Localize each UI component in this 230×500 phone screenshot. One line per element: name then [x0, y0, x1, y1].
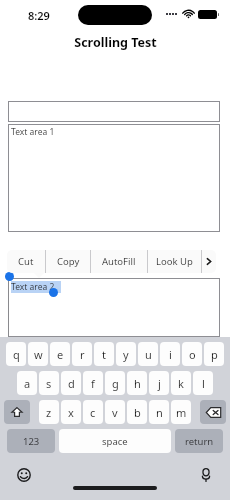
staticText: x: [68, 405, 74, 420]
button[interactable]: Text area 1: [8, 124, 220, 232]
staticText: n: [156, 405, 163, 420]
button[interactable]: a: [17, 371, 37, 395]
button[interactable]: return: [175, 429, 223, 453]
staticText: p: [211, 347, 218, 362]
staticText: Cut: [18, 255, 34, 268]
button[interactable]: r: [72, 342, 92, 366]
staticText: Look Up: [156, 255, 193, 268]
button[interactable]: c: [83, 400, 103, 424]
button[interactable]: q: [6, 342, 26, 366]
staticText: Scrolling Test: [74, 34, 157, 51]
button[interactable]: b: [127, 400, 147, 424]
staticText: u: [145, 347, 152, 362]
staticText: v: [112, 405, 118, 420]
button[interactable]: [8, 101, 220, 122]
staticText: o: [189, 347, 196, 362]
button[interactable]: u: [138, 342, 158, 366]
staticText: s: [46, 376, 52, 391]
button[interactable]: f: [83, 371, 103, 395]
button[interactable]: Cut: [7, 250, 45, 273]
staticText: c: [90, 405, 96, 420]
button[interactable]: More: [202, 250, 216, 273]
staticText: l: [202, 376, 205, 391]
button[interactable]: z: [39, 400, 59, 424]
button[interactable]: e: [50, 342, 70, 366]
button[interactable]: Emoji: [14, 465, 34, 485]
button[interactable]: Text area 2: [8, 278, 220, 337]
staticText: a: [24, 376, 31, 391]
button[interactable]: 123: [7, 429, 55, 453]
staticText: k: [178, 376, 184, 391]
button[interactable]: j: [149, 371, 169, 395]
staticText: m: [176, 405, 187, 420]
button[interactable]: h: [127, 371, 147, 395]
staticText: h: [134, 376, 141, 391]
button[interactable]: m: [171, 400, 191, 424]
button[interactable]: t: [94, 342, 114, 366]
staticText: w: [34, 347, 43, 362]
button[interactable]: o: [182, 342, 202, 366]
button[interactable]: l: [193, 371, 213, 395]
button[interactable]: Backspace: [200, 400, 226, 424]
button[interactable]: Shift: [4, 400, 30, 424]
staticText: g: [112, 376, 119, 391]
staticText: Text area 1: [11, 126, 55, 138]
button[interactable]: g: [105, 371, 125, 395]
staticText: 8:29: [28, 8, 50, 23]
staticText: e: [57, 347, 64, 362]
staticText: 123: [23, 435, 40, 448]
staticText: q: [13, 347, 20, 362]
staticText: i: [169, 347, 172, 362]
staticText: Copy: [57, 255, 80, 268]
button[interactable]: Copy: [46, 250, 90, 273]
button[interactable]: k: [171, 371, 191, 395]
staticText: b: [134, 405, 141, 420]
staticText: j: [158, 376, 161, 391]
button[interactable]: s: [39, 371, 59, 395]
staticText: space: [102, 435, 128, 448]
staticText: z: [46, 405, 52, 420]
button[interactable]: x: [61, 400, 81, 424]
button[interactable]: AutoFill: [91, 250, 147, 273]
staticText: AutoFill: [102, 255, 136, 268]
button[interactable]: Look Up: [148, 250, 201, 273]
button[interactable]: d: [61, 371, 81, 395]
staticText: d: [68, 376, 75, 391]
button[interactable]: w: [28, 342, 48, 366]
staticText: r: [80, 347, 85, 362]
staticText: t: [102, 347, 106, 362]
button[interactable]: v: [105, 400, 125, 424]
staticText: return: [185, 435, 214, 448]
button[interactable]: n: [149, 400, 169, 424]
button[interactable]: y: [116, 342, 136, 366]
staticText: f: [91, 376, 95, 391]
button[interactable]: Dictation: [196, 465, 216, 485]
staticText: y: [123, 347, 129, 362]
button[interactable]: space: [59, 429, 171, 453]
button[interactable]: i: [160, 342, 180, 366]
button[interactable]: p: [204, 342, 224, 366]
staticText: Text area 2: [11, 281, 55, 293]
